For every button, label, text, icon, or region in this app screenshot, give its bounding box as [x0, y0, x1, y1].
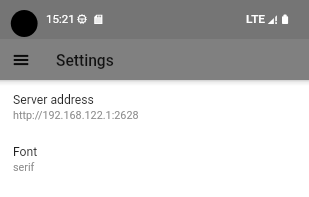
button[interactable]: Font	[0, 132, 309, 184]
staticText: Server address	[13, 93, 94, 107]
staticText: serif	[13, 161, 35, 174]
button[interactable]: Open navigation menu	[5, 44, 37, 76]
staticText: Font	[13, 145, 38, 159]
staticText: Settings	[56, 52, 114, 70]
staticText: 15:21	[46, 12, 75, 25]
staticText: http://192.168.122.1:2628	[13, 109, 139, 122]
staticText: LTE	[246, 12, 266, 26]
button[interactable]: Server address	[0, 80, 309, 132]
